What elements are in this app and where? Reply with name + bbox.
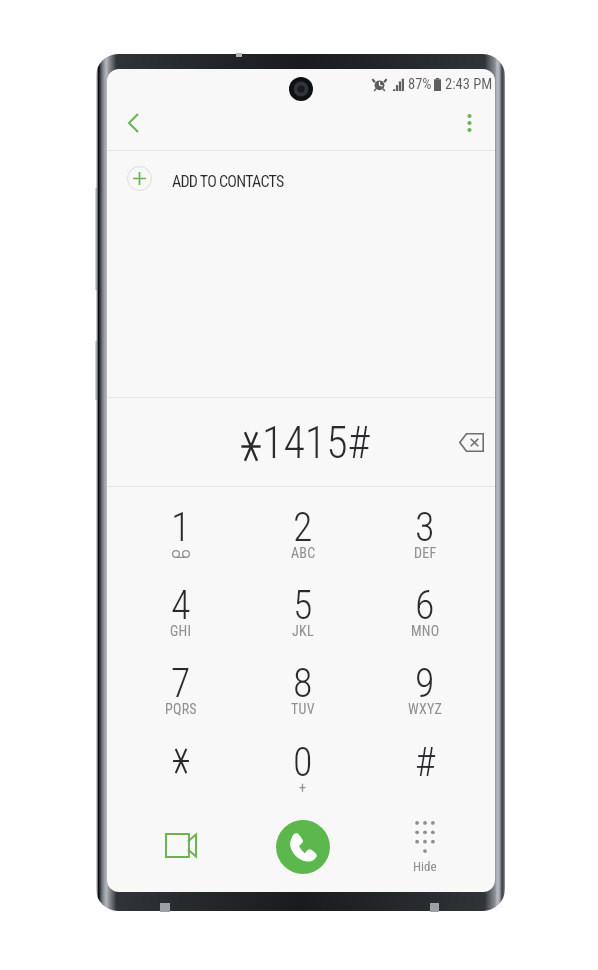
staticText: +	[299, 780, 307, 796]
button[interactable]: More options	[447, 101, 491, 144]
staticText: Hide	[413, 859, 437, 874]
button[interactable]: #	[364, 722, 486, 801]
staticText: 7	[171, 660, 191, 707]
button[interactable]	[120, 722, 242, 801]
staticText: JKL	[292, 623, 314, 639]
button[interactable]: 7	[120, 643, 242, 722]
button[interactable]: 5	[242, 565, 364, 643]
button[interactable]: ADD TO CONTACTS	[107, 151, 495, 208]
staticText: PQRS	[165, 701, 197, 717]
staticText: 8	[293, 660, 313, 707]
staticText: ABC	[291, 545, 316, 561]
button[interactable]: Backspace	[449, 420, 493, 464]
button[interactable]: Call	[276, 820, 330, 874]
button[interactable]: 3	[364, 487, 486, 565]
button[interactable]: 2	[242, 487, 364, 565]
button[interactable]: 1	[120, 487, 242, 565]
button[interactable]: 0	[242, 722, 364, 801]
button[interactable]: 4	[120, 565, 242, 643]
staticText: 3	[415, 504, 435, 551]
staticText: WXYZ	[408, 701, 443, 717]
button[interactable]: Video call	[120, 801, 242, 892]
staticText: 5	[293, 582, 313, 629]
button[interactable]: 8	[242, 643, 364, 722]
staticText: 0	[293, 739, 313, 786]
staticText: 2:43 PM	[445, 76, 493, 93]
button[interactable]: Back	[111, 101, 155, 144]
staticText: GHI	[170, 623, 192, 639]
staticText: 2	[293, 504, 313, 551]
staticText: 6	[415, 582, 435, 629]
staticText: 4	[171, 582, 191, 629]
button[interactable]: 6	[364, 565, 486, 643]
staticText: 1415#	[262, 417, 371, 469]
staticText: DEF	[414, 545, 437, 561]
staticText: 9	[415, 660, 435, 707]
staticText: TUV	[291, 701, 315, 717]
button[interactable]: 9	[364, 643, 486, 722]
button[interactable]: Hide	[364, 801, 486, 892]
staticText: ADD TO CONTACTS	[172, 172, 284, 191]
staticText: MNO	[411, 623, 440, 639]
staticText: 87%	[408, 76, 432, 93]
staticText: 1	[171, 504, 191, 551]
staticText: #	[415, 739, 436, 786]
